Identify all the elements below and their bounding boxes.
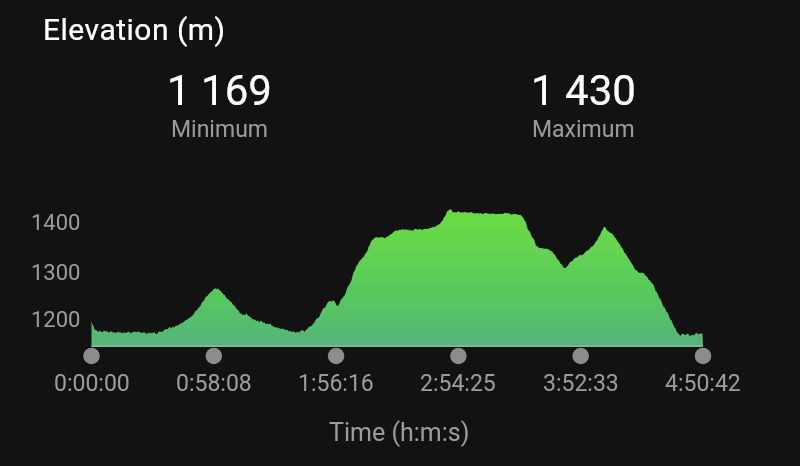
staticText: 0:00:00 [54,370,130,396]
staticText: 1 430 [531,66,636,108]
button[interactable]: 1 169 [89,60,349,146]
staticText: 2:54:25 [420,370,496,396]
staticText: 4:50:42 [665,370,741,396]
staticText: 1200 [31,307,81,333]
staticText: 1 169 [167,66,272,108]
staticText: 3:52:33 [543,370,619,396]
staticText: 1400 [31,210,81,236]
staticText: 1:56:16 [298,370,374,396]
button[interactable]: Elevation profile chart [20,196,780,366]
staticText: Time (h:m:s) [329,418,470,447]
button[interactable]: 1 430 [453,60,713,146]
staticText: 1300 [31,260,81,286]
staticText: Elevation (m) [43,12,226,47]
staticText: Minimum [171,116,268,143]
button[interactable]: Elevation (m) [43,9,273,49]
staticText: Maximum [532,116,635,143]
staticText: 0:58:08 [176,370,252,396]
